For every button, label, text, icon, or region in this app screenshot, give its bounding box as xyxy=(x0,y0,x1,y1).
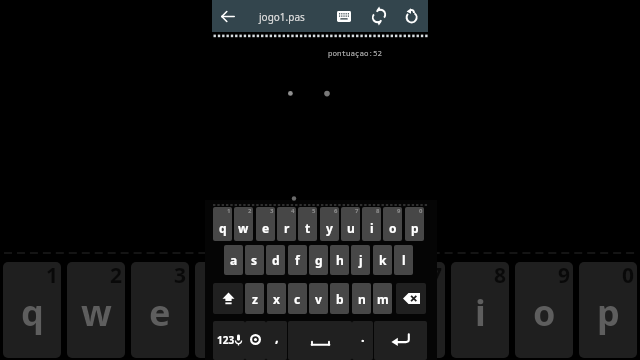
staticText: w xyxy=(81,288,112,337)
staticText: 1 xyxy=(227,207,231,215)
button[interactable]: 5 xyxy=(298,207,317,241)
staticText: u xyxy=(404,288,428,337)
staticText: 3 xyxy=(270,207,274,215)
button[interactable]: 0 xyxy=(579,262,637,358)
staticText: 9 xyxy=(397,207,401,215)
button[interactable]: 6 xyxy=(323,262,381,358)
button[interactable]: d xyxy=(266,245,285,275)
button[interactable]: Undo xyxy=(396,0,426,32)
staticText: v xyxy=(315,291,322,307)
staticText: d xyxy=(272,252,280,268)
staticText: 2 xyxy=(248,207,252,215)
staticText: 5 xyxy=(312,207,316,215)
staticText: 9 xyxy=(558,262,571,290)
staticText: 8 xyxy=(494,262,507,290)
staticText: j xyxy=(359,252,363,268)
button[interactable]: , xyxy=(266,321,287,360)
button[interactable]: m xyxy=(373,283,392,314)
staticText: q xyxy=(21,288,44,337)
staticText: u xyxy=(347,220,355,236)
staticText: r xyxy=(284,220,290,236)
button[interactable]: k xyxy=(373,245,392,275)
staticText: e xyxy=(149,288,171,337)
staticText: 1 xyxy=(46,262,59,290)
staticText: 2 xyxy=(110,262,123,290)
staticText: a xyxy=(230,252,238,268)
staticText: i xyxy=(475,288,486,337)
button[interactable] xyxy=(396,283,426,314)
staticText: pontuaçao:52 xyxy=(328,48,382,58)
button[interactable]: x xyxy=(267,283,286,314)
staticText: r xyxy=(216,288,233,337)
staticText: t xyxy=(305,220,311,236)
staticText: y xyxy=(342,288,363,337)
button[interactable]: Sync xyxy=(364,0,394,32)
staticText: 7 xyxy=(355,207,359,215)
staticText: 8 xyxy=(376,207,380,215)
button[interactable]: . xyxy=(352,321,373,360)
button[interactable]: a xyxy=(224,245,243,275)
staticText: 5 xyxy=(302,262,315,290)
button[interactable]: n xyxy=(352,283,371,314)
staticText: e xyxy=(262,220,270,236)
button[interactable] xyxy=(245,321,266,360)
button[interactable]: c xyxy=(288,283,307,314)
button[interactable]: h xyxy=(330,245,349,275)
staticText: 123 xyxy=(217,333,235,347)
staticText: f xyxy=(295,252,300,268)
button[interactable]: Back xyxy=(212,0,244,32)
button[interactable]: 6 xyxy=(320,207,339,241)
staticText: g xyxy=(315,252,323,268)
button[interactable]: 4 xyxy=(195,262,253,358)
staticText: 3 xyxy=(174,262,187,290)
staticText: l xyxy=(402,252,406,268)
staticText: 6 xyxy=(334,207,338,215)
staticText: o xyxy=(389,220,397,236)
button[interactable]: 0 xyxy=(405,207,424,241)
button[interactable]: 8 xyxy=(362,207,381,241)
staticText: p xyxy=(597,288,620,337)
button[interactable]: Keyboard xyxy=(329,0,359,32)
staticText: 4 xyxy=(291,207,295,215)
button[interactable]: 7 xyxy=(387,262,445,358)
staticText: q xyxy=(219,220,227,236)
button[interactable]: 1 xyxy=(213,207,232,241)
button[interactable]: 3 xyxy=(256,207,275,241)
button[interactable]: 4 xyxy=(277,207,296,241)
button[interactable]: v xyxy=(309,283,328,314)
button[interactable]: 123 xyxy=(213,321,245,360)
button[interactable] xyxy=(374,321,427,360)
staticText: t xyxy=(280,288,296,337)
button[interactable]: 2 xyxy=(234,207,253,241)
button[interactable]: g xyxy=(309,245,328,275)
staticText: w xyxy=(238,220,249,236)
button[interactable]: s xyxy=(245,245,264,275)
button[interactable] xyxy=(213,283,243,314)
staticText: k xyxy=(379,252,387,268)
staticText: 0 xyxy=(419,207,423,215)
staticText: z xyxy=(252,291,258,307)
button[interactable]: 2 xyxy=(67,262,125,358)
staticText: y xyxy=(326,220,333,236)
button[interactable]: 9 xyxy=(515,262,573,358)
button[interactable]: 9 xyxy=(383,207,402,241)
button[interactable] xyxy=(288,321,352,360)
button[interactable]: 3 xyxy=(131,262,189,358)
staticText: p xyxy=(411,220,419,236)
button[interactable]: j xyxy=(351,245,370,275)
staticText: , xyxy=(275,328,279,346)
button[interactable]: 8 xyxy=(451,262,509,358)
button[interactable]: f xyxy=(288,245,307,275)
button[interactable]: 1 xyxy=(3,262,61,358)
staticText: 7 xyxy=(430,262,443,290)
button[interactable]: l xyxy=(394,245,413,275)
button[interactable]: 5 xyxy=(259,262,317,358)
staticText: b xyxy=(336,291,344,307)
button[interactable]: b xyxy=(330,283,349,314)
staticText: . xyxy=(361,328,365,346)
button[interactable]: 7 xyxy=(341,207,360,241)
staticText: n xyxy=(358,291,366,307)
staticText: 6 xyxy=(366,262,379,290)
button[interactable]: z xyxy=(245,283,264,314)
staticText: h xyxy=(336,252,344,268)
